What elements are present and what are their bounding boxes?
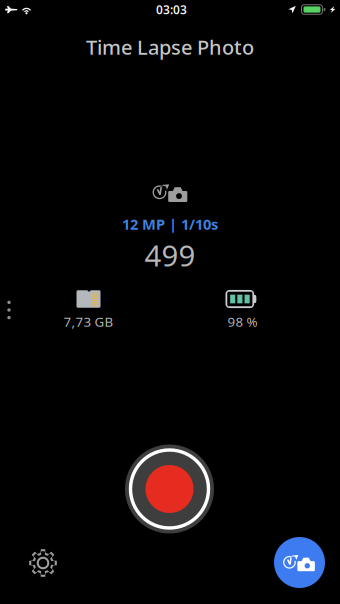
staticText: 7,73 GB [63,313,113,330]
staticText: 12 MP | 1/10s [122,214,218,234]
button[interactable]: Time lapse capture settings [274,537,325,588]
staticText: 03:03 [156,1,187,17]
staticText: Time Lapse Photo [86,34,254,60]
staticText: 499 [144,235,195,274]
button[interactable]: Record [125,444,214,533]
staticText: 98 % [227,313,257,330]
button[interactable]: Settings [20,540,66,586]
